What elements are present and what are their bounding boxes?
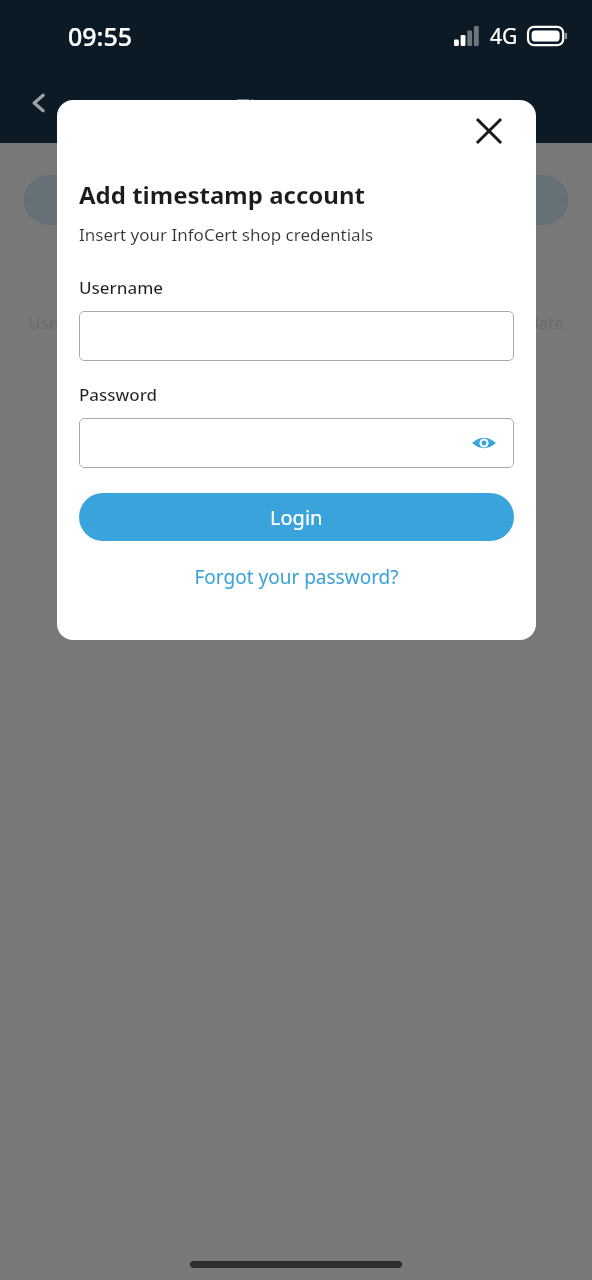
staticText: 09:55 — [68, 19, 133, 53]
button[interactable] — [79, 311, 514, 361]
staticText: Username — [79, 276, 163, 299]
button[interactable]: Forgot your password? — [79, 559, 514, 595]
button[interactable]: Back — [18, 81, 62, 125]
staticText: Insert your InfoCert shop credentials — [79, 223, 374, 246]
staticText: Timestamp — [237, 91, 355, 121]
staticText: Password — [79, 383, 158, 406]
staticText: Username — [28, 311, 111, 334]
button[interactable]: Show password — [79, 418, 514, 468]
button[interactable]: Show password — [466, 425, 502, 461]
staticText: Forgot your password? — [194, 564, 399, 590]
button[interactable]: Login — [79, 493, 514, 541]
button[interactable]: Close — [466, 108, 512, 154]
staticText: Expiration date — [443, 311, 564, 334]
staticText: 4G — [490, 22, 518, 51]
staticText: Add timestamp account — [79, 178, 365, 211]
button[interactable] — [24, 175, 568, 225]
staticText: Login — [270, 504, 323, 531]
